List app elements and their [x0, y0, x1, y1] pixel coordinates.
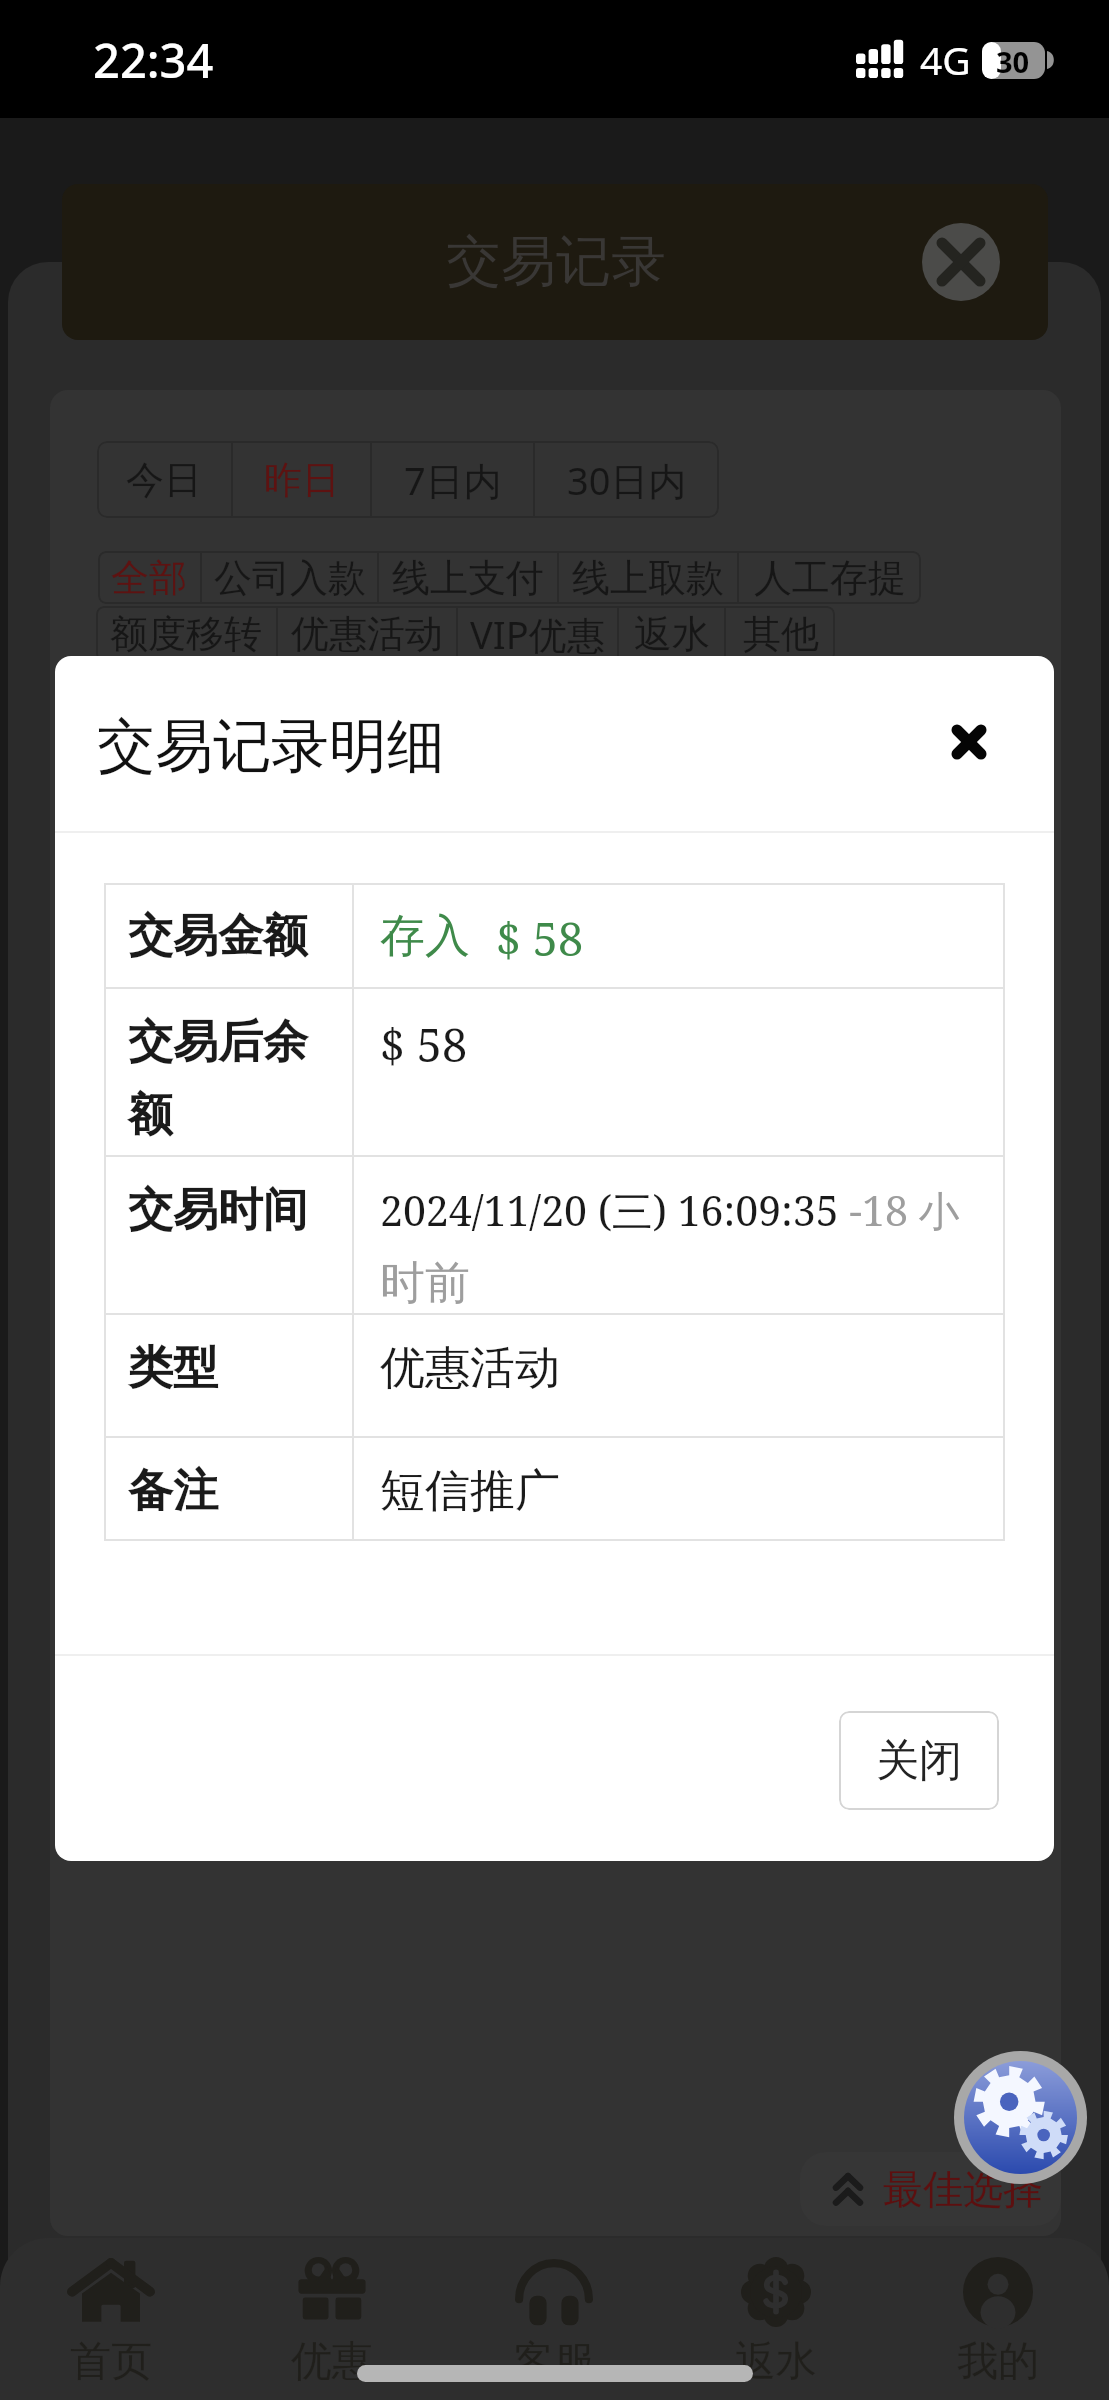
staticText: 2024/11/20 (三) 16:09:35 -18 小	[380, 1182, 960, 1238]
staticText: $ 58	[380, 1014, 468, 1075]
staticText: VIP优惠	[470, 608, 605, 660]
button[interactable]: Settings	[954, 2051, 1087, 2184]
staticText: 备注	[128, 1463, 218, 1520]
button[interactable]: 全部	[98, 551, 200, 604]
staticText: 最佳选择	[883, 2164, 1043, 2214]
staticText: 交易金额	[128, 908, 308, 965]
button[interactable]: 额度移转	[96, 606, 276, 662]
button[interactable]: 人工存提	[739, 551, 921, 604]
staticText: 全部	[111, 554, 187, 602]
staticText: 30	[996, 42, 1030, 79]
staticText: 返水	[634, 610, 710, 658]
staticText: 昨日	[264, 456, 340, 504]
staticText: 7日内	[404, 454, 502, 506]
staticText: 返水	[735, 2336, 817, 2388]
staticText: 优惠活动	[380, 1340, 560, 1397]
button[interactable]: 返水	[665, 2238, 887, 2400]
staticText: 额度移转	[110, 610, 262, 658]
staticText: 优惠	[291, 2336, 373, 2388]
staticText: 类型	[128, 1340, 218, 1397]
button[interactable]: 今日	[97, 441, 231, 518]
button[interactable]: 返水	[619, 606, 724, 662]
staticText: 人工存提	[754, 554, 906, 602]
button[interactable]: 公司入款	[202, 551, 377, 604]
button[interactable]: 关闭	[839, 1711, 999, 1810]
staticText: 关闭	[876, 1734, 962, 1788]
staticText: 客服	[513, 2336, 595, 2388]
staticText: 我的	[957, 2336, 1039, 2388]
staticText: 首页	[70, 2336, 152, 2388]
staticText: $ 58	[496, 908, 584, 969]
staticText: 其他	[743, 610, 819, 658]
staticText: 存入	[380, 908, 470, 965]
button[interactable]: Close page	[922, 223, 1000, 301]
button[interactable]: 线上支付	[379, 551, 557, 604]
button[interactable]: 优惠活动	[278, 606, 456, 662]
staticText: 4G	[920, 33, 971, 86]
button[interactable]: 30日内	[535, 441, 719, 518]
button[interactable]: 7日内	[372, 441, 533, 518]
staticText: 短信推广	[380, 1463, 560, 1520]
staticText: 30日内	[567, 454, 687, 506]
button[interactable]: Close	[930, 703, 1008, 781]
button[interactable]: 昨日	[233, 441, 370, 518]
button[interactable]: 我的	[887, 2238, 1109, 2400]
staticText: 优惠活动	[291, 610, 443, 658]
staticText: 22:34	[93, 28, 214, 92]
staticText: 今日	[126, 456, 202, 504]
staticText: 交易后余额	[128, 1014, 352, 1143]
staticText: 交易时间	[128, 1182, 308, 1239]
staticText: 交易记录明细	[97, 710, 445, 783]
button[interactable]: 优惠	[221, 2238, 443, 2400]
button[interactable]: 客服	[443, 2238, 665, 2400]
staticText: 线上取款	[572, 554, 724, 602]
button[interactable]: 最佳选择	[800, 2152, 1061, 2226]
button[interactable]: 首页	[0, 2238, 221, 2400]
button[interactable]: VIP优惠	[458, 606, 617, 662]
staticText: 线上支付	[392, 554, 544, 602]
button[interactable]: 其他	[726, 606, 835, 662]
button[interactable]: 线上取款	[559, 551, 737, 604]
staticText: 公司入款	[214, 554, 366, 602]
staticText: 时前	[380, 1255, 470, 1312]
staticText: 交易记录	[446, 227, 666, 296]
